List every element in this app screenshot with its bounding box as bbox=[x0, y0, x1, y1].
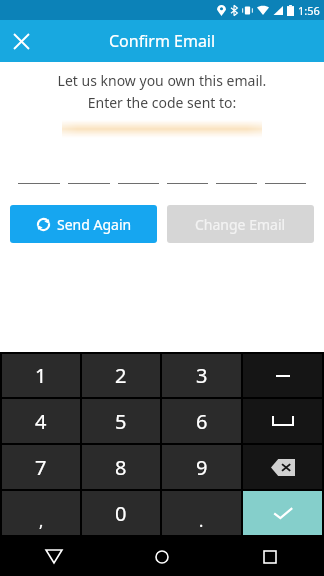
button[interactable]: Enter bbox=[243, 491, 322, 535]
button[interactable]: Dash bbox=[243, 354, 322, 397]
button[interactable]: 8 bbox=[82, 445, 160, 489]
button[interactable]: Close bbox=[0, 20, 42, 62]
staticText: Confirm Email bbox=[109, 30, 216, 52]
button[interactable]: 9 bbox=[162, 445, 241, 489]
staticText: Send Again bbox=[57, 215, 132, 234]
button[interactable]: 3 bbox=[162, 354, 241, 397]
staticText: 5 bbox=[115, 408, 127, 435]
staticText: . bbox=[199, 510, 204, 532]
staticText: 2 bbox=[115, 362, 127, 389]
staticText: 0 bbox=[115, 500, 127, 527]
button[interactable]: 4 bbox=[2, 399, 80, 443]
button[interactable]: . bbox=[162, 491, 241, 535]
button[interactable]: 6 bbox=[162, 399, 241, 443]
staticText: 8 bbox=[115, 454, 127, 481]
button[interactable]: 7 bbox=[2, 445, 80, 489]
button[interactable]: 0 bbox=[82, 491, 160, 535]
button[interactable]: Space bbox=[243, 399, 322, 443]
button[interactable]: Back bbox=[0, 537, 108, 576]
staticText: 7 bbox=[35, 454, 47, 481]
button[interactable]: 5 bbox=[82, 399, 160, 443]
staticText: 4 bbox=[35, 408, 47, 435]
button[interactable]: Home bbox=[108, 537, 216, 576]
button[interactable]: Backspace bbox=[243, 445, 322, 489]
staticText: 1 bbox=[35, 362, 47, 389]
staticText: 3 bbox=[196, 362, 208, 389]
button[interactable]: 1 bbox=[2, 354, 80, 397]
staticText: , bbox=[39, 510, 44, 532]
button[interactable]: , bbox=[2, 491, 80, 535]
staticText: 1:56 bbox=[298, 3, 320, 18]
button[interactable]: 2 bbox=[82, 354, 160, 397]
button[interactable]: Send Again bbox=[10, 205, 157, 243]
button[interactable]: Recent apps bbox=[216, 537, 324, 576]
staticText: 6 bbox=[196, 408, 208, 435]
staticText: Enter the code sent to: bbox=[0, 93, 324, 112]
staticText: Let us know you own this email. bbox=[0, 71, 324, 90]
button[interactable]: Change Email bbox=[167, 205, 314, 243]
staticText: 9 bbox=[196, 454, 208, 481]
staticText: Change Email bbox=[195, 215, 286, 234]
